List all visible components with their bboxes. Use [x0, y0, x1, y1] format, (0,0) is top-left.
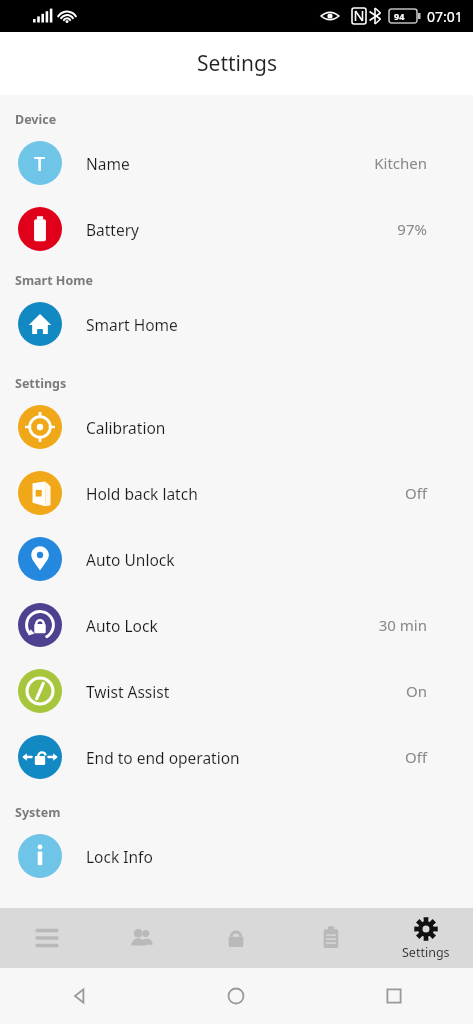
button[interactable]: Log: [283, 908, 378, 968]
staticText: Settings: [15, 375, 67, 392]
staticText: Auto Lock: [86, 615, 378, 636]
staticText: Twist Assist: [86, 681, 406, 702]
button[interactable]: Battery: [0, 196, 473, 262]
button[interactable]: Users: [94, 908, 188, 968]
button[interactable]: Menu: [0, 908, 94, 968]
staticText: T: [34, 150, 46, 177]
button[interactable]: Lock: [188, 908, 283, 968]
button[interactable]: Calibration: [0, 394, 473, 460]
button[interactable]: T: [0, 130, 473, 196]
button[interactable]: Settings: [378, 908, 473, 968]
staticText: 94: [394, 10, 405, 22]
staticText: Off: [404, 747, 427, 767]
staticText: Settings: [402, 944, 450, 961]
button[interactable]: Auto Unlock: [0, 526, 473, 592]
staticText: Name: [86, 153, 374, 174]
button[interactable]: Twist Assist: [0, 658, 473, 724]
staticText: Smart Home: [86, 314, 427, 335]
staticText: Device: [15, 111, 57, 128]
staticText: End to end operation: [86, 747, 404, 768]
staticText: Auto Unlock: [86, 549, 427, 570]
staticText: Hold back latch: [86, 483, 404, 504]
button[interactable]: Smart Home: [0, 291, 473, 357]
staticText: 07:01: [427, 7, 463, 26]
staticText: Kitchen: [374, 153, 427, 173]
staticText: 30 min: [378, 615, 427, 635]
button[interactable]: Back: [0, 968, 157, 1024]
staticText: Smart Home: [15, 272, 93, 289]
staticText: Settings: [197, 49, 277, 78]
staticText: Lock Info: [86, 846, 427, 867]
button[interactable]: End to end operation: [0, 724, 473, 790]
staticText: On: [406, 681, 427, 701]
button[interactable]: Hold back latch: [0, 460, 473, 526]
staticText: Battery: [86, 219, 397, 240]
button[interactable]: Home: [157, 968, 315, 1024]
staticText: Calibration: [86, 417, 427, 438]
button[interactable]: Auto Lock: [0, 592, 473, 658]
button[interactable]: Lock Info: [0, 823, 473, 889]
staticText: 97%: [397, 219, 427, 239]
staticText: Off: [404, 483, 427, 503]
button[interactable]: Recents: [315, 968, 473, 1024]
staticText: System: [15, 804, 61, 821]
